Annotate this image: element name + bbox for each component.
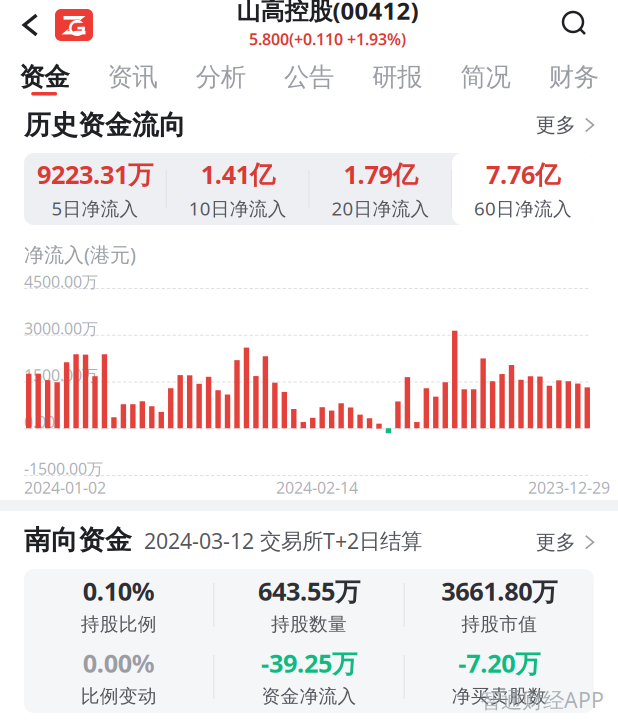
staticText: 7.76亿 — [486, 157, 560, 191]
button[interactable]: 1.79亿 — [309, 153, 451, 225]
button[interactable]: 7.76亿 — [452, 153, 594, 225]
staticText: 5.800(+0.110 +1.93%) — [249, 28, 406, 49]
button[interactable]: 9223.31万 — [24, 153, 166, 225]
staticText: 0.10% — [83, 574, 155, 608]
staticText: 净买卖股数 — [452, 685, 547, 708]
staticText: 研报 — [372, 61, 422, 92]
staticText: 20日净流入 — [331, 196, 429, 221]
button[interactable]: 7.76亿 — [452, 153, 594, 225]
staticText: 资金 — [19, 61, 69, 92]
button[interactable]: 1.41亿 — [167, 153, 309, 225]
staticText: 60日净流入 — [474, 196, 572, 221]
button[interactable]: 资讯 — [88, 50, 177, 98]
staticText: 净流入(港元) — [24, 241, 136, 268]
staticText: 643.55万 — [258, 574, 360, 608]
button[interactable]: Back — [0, 2, 55, 48]
staticText: 智通财经APP — [480, 686, 604, 714]
button[interactable]: 财务 — [530, 50, 618, 98]
staticText: 持股比例 — [81, 613, 157, 636]
button[interactable]: 更多 — [536, 530, 594, 554]
staticText: 0.00 — [24, 411, 55, 432]
staticText: 1.79亿 — [343, 157, 417, 191]
staticText: -7.20万 — [458, 646, 540, 680]
button[interactable]: 简况 — [441, 50, 530, 98]
button[interactable]: 资金 — [0, 50, 88, 98]
button[interactable]: 更多 — [536, 113, 594, 137]
staticText: 资金净流入 — [261, 685, 356, 708]
staticText: 资讯 — [107, 61, 157, 92]
button[interactable]: 研报 — [353, 50, 441, 98]
staticText: 0.00% — [83, 646, 155, 680]
staticText: 1.41亿 — [201, 157, 275, 191]
staticText: 7.76亿 — [486, 157, 560, 191]
staticText: 公告 — [284, 61, 334, 92]
staticText: 持股数量 — [271, 613, 347, 636]
staticText: 2023-12-29 — [528, 477, 610, 498]
button[interactable]: 公告 — [265, 50, 353, 98]
staticText: 9223.31万 — [37, 157, 153, 191]
button[interactable]: 智通财经 — [55, 9, 93, 41]
button[interactable]: Search — [562, 2, 618, 48]
staticText: 3661.80万 — [441, 574, 557, 608]
staticText: 10日净流入 — [189, 196, 287, 221]
staticText: 2024-01-02 — [24, 477, 106, 498]
staticText: -1500.00万 — [24, 458, 103, 479]
staticText: 3000.00万 — [24, 318, 98, 339]
staticText: 5日净流入 — [51, 196, 138, 221]
staticText: 持股市值 — [461, 613, 537, 636]
staticText: 更多 — [536, 113, 576, 137]
staticText: 历史资金流向 — [24, 109, 186, 141]
staticText: 2024-02-14 — [276, 477, 358, 498]
staticText: 南向资金 — [24, 524, 132, 556]
staticText: 1500.00万 — [24, 364, 98, 386]
staticText: 简况 — [461, 61, 511, 92]
staticText: 分析 — [196, 61, 246, 92]
staticText: 财务 — [549, 61, 599, 92]
staticText: 山高控股(00412) — [236, 0, 418, 26]
staticText: 更多 — [536, 530, 576, 554]
button[interactable]: 分析 — [177, 50, 265, 98]
staticText: 2024-03-12 交易所T+2日结算 — [132, 526, 422, 555]
staticText: 60日净流入 — [474, 196, 572, 221]
staticText: -39.25万 — [261, 646, 357, 680]
staticText: 比例变动 — [81, 685, 157, 708]
staticText: 4500.00万 — [24, 271, 98, 292]
